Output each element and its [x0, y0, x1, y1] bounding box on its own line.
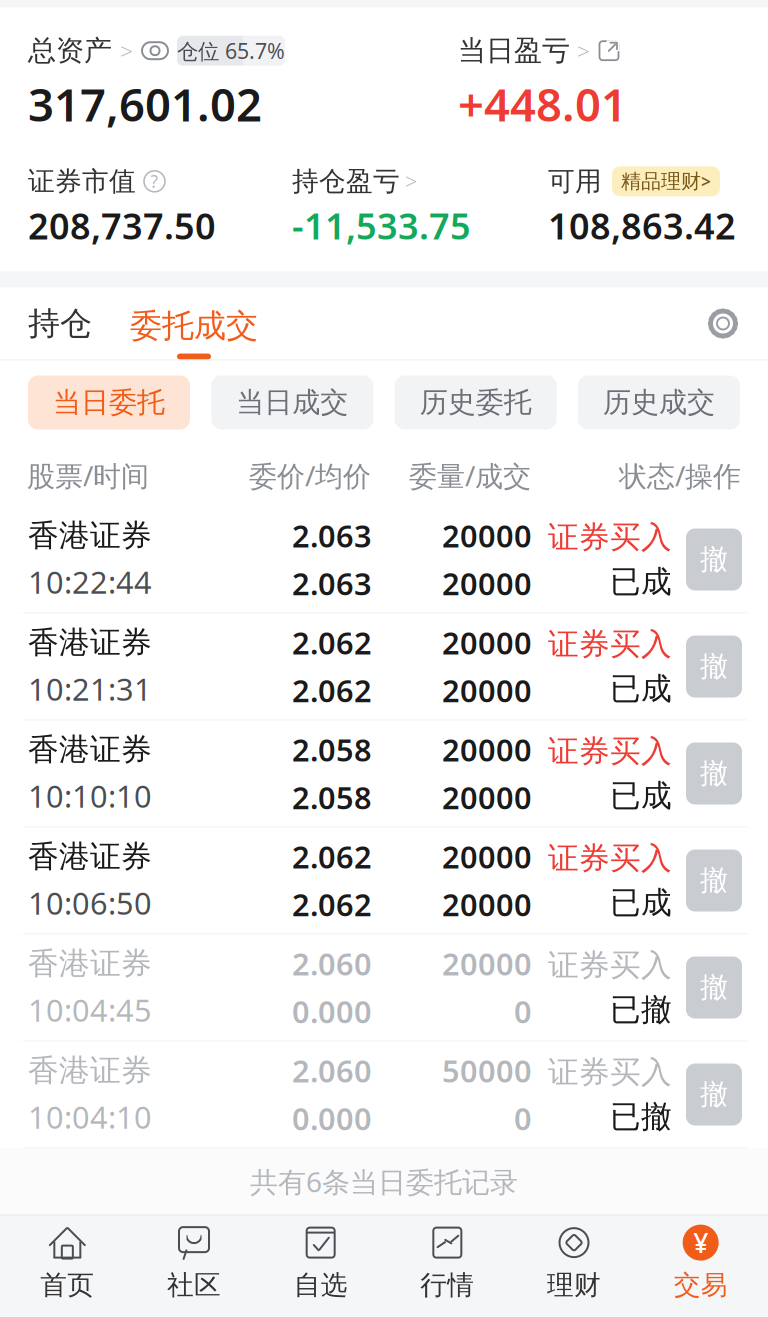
- button[interactable]: 精品理财: [612, 166, 720, 196]
- staticText: 2.063: [292, 515, 372, 556]
- staticText: 已撤: [610, 1098, 672, 1136]
- staticText: 208,737.50: [28, 202, 216, 249]
- button[interactable]: 委托成交: [130, 287, 258, 359]
- button[interactable]: 撤: [686, 956, 742, 1018]
- staticText: 持仓: [28, 304, 92, 343]
- staticText: 20000: [442, 729, 532, 770]
- staticText: 香港证券: [28, 945, 152, 982]
- staticText: 10:22:44: [28, 561, 152, 602]
- staticText: >: [577, 36, 590, 66]
- staticText: 20000: [442, 777, 532, 818]
- staticText: >: [405, 167, 417, 195]
- staticText: 20000: [442, 515, 532, 556]
- staticText: 2.062: [292, 670, 372, 711]
- staticText: 0: [514, 1098, 532, 1139]
- button[interactable]: 当日盈亏: [458, 33, 621, 68]
- staticText: ?: [150, 170, 158, 193]
- staticText: 已成: [610, 670, 672, 708]
- button[interactable]: 香港证券: [0, 613, 768, 720]
- button[interactable]: 设置: [706, 306, 740, 340]
- staticText: 10:04:45: [28, 989, 152, 1030]
- staticText: 撤: [700, 649, 728, 684]
- button[interactable]: 香港证券: [0, 720, 768, 827]
- staticText: 2.062: [292, 622, 372, 663]
- staticText: 委价/均价: [249, 457, 371, 494]
- staticText: 当日委托: [53, 385, 165, 420]
- staticText: 股票/时间: [27, 457, 149, 494]
- button[interactable]: 持仓盈亏: [292, 165, 417, 198]
- staticText: 20000: [442, 943, 532, 984]
- staticText: 20000: [442, 836, 532, 877]
- staticText: 香港证券: [28, 1052, 152, 1089]
- staticText: 10:21:31: [28, 668, 152, 709]
- staticText: 撤: [700, 1077, 728, 1112]
- button[interactable]: 自选: [257, 1215, 384, 1307]
- staticText: 状态/操作: [619, 457, 741, 494]
- staticText: 0.000: [292, 1098, 372, 1139]
- button[interactable]: 香港证券: [0, 934, 768, 1041]
- button[interactable]: 撤: [686, 635, 742, 697]
- staticText: 交易: [674, 1269, 728, 1301]
- staticText: 香港证券: [28, 838, 152, 875]
- button[interactable]: 当日委托: [28, 375, 190, 429]
- staticText: 2.062: [292, 836, 372, 877]
- staticText: 证券买入: [548, 1053, 672, 1091]
- staticText: 2.063: [292, 563, 372, 604]
- staticText: -11,533.75: [292, 202, 471, 249]
- staticText: 委量/成交: [409, 457, 531, 494]
- button[interactable]: 撤: [686, 742, 742, 804]
- staticText: 10:10:10: [28, 775, 152, 816]
- button[interactable]: 历史成交: [578, 375, 740, 429]
- staticText: 当日盈亏: [458, 33, 570, 68]
- button[interactable]: 香港证券: [0, 506, 768, 613]
- staticText: 已成: [610, 563, 672, 601]
- button[interactable]: 历史委托: [395, 375, 557, 429]
- button[interactable]: 香港证券: [0, 827, 768, 934]
- staticText: 总资产: [28, 33, 112, 68]
- staticText: 317,601.02: [28, 74, 262, 134]
- staticText: 2.060: [292, 1050, 372, 1091]
- staticText: >: [120, 36, 133, 66]
- staticText: 精品理财: [621, 169, 701, 194]
- staticText: >: [701, 170, 711, 193]
- staticText: 撤: [700, 970, 728, 1005]
- staticText: 仓位 65.7%: [177, 36, 285, 65]
- button[interactable]: 总资产: [28, 33, 285, 68]
- staticText: 已撤: [610, 991, 672, 1029]
- button[interactable]: 香港证券: [0, 1041, 768, 1148]
- staticText: 可用: [548, 165, 602, 198]
- staticText: 10:06:50: [28, 882, 152, 923]
- button[interactable]: 撤: [686, 1063, 742, 1125]
- button[interactable]: 理财: [511, 1215, 637, 1307]
- staticText: 2.062: [292, 884, 372, 925]
- staticText: 持仓盈亏: [292, 165, 400, 198]
- button[interactable]: 首页: [4, 1215, 131, 1307]
- button[interactable]: 撤: [686, 849, 742, 911]
- staticText: 香港证券: [28, 517, 152, 554]
- staticText: 20000: [442, 670, 532, 711]
- staticText: 证券买入: [548, 946, 672, 984]
- staticText: 已成: [610, 777, 672, 815]
- staticText: 撤: [700, 863, 728, 898]
- staticText: 2.060: [292, 943, 372, 984]
- button[interactable]: 持仓: [28, 287, 92, 359]
- button[interactable]: 行情: [384, 1215, 511, 1307]
- staticText: +448.01: [458, 74, 627, 134]
- button[interactable]: 撤: [686, 528, 742, 590]
- staticText: 行情: [420, 1269, 474, 1301]
- staticText: 0.000: [292, 991, 372, 1032]
- button[interactable]: 当日成交: [211, 375, 373, 429]
- staticText: ¥: [693, 1225, 708, 1260]
- staticText: 撤: [700, 542, 728, 577]
- button[interactable]: 证券市值: [28, 165, 165, 198]
- staticText: 证券买入: [548, 732, 672, 770]
- staticText: 10:04:10: [28, 1096, 152, 1137]
- staticText: 社区: [167, 1269, 221, 1301]
- staticText: 20000: [442, 622, 532, 663]
- staticText: 委托成交: [130, 306, 258, 345]
- staticText: 证券市值: [28, 165, 136, 198]
- staticText: 理财: [547, 1269, 601, 1301]
- staticText: 历史成交: [603, 385, 715, 420]
- button[interactable]: 社区: [131, 1215, 257, 1307]
- button[interactable]: ¥: [637, 1215, 764, 1307]
